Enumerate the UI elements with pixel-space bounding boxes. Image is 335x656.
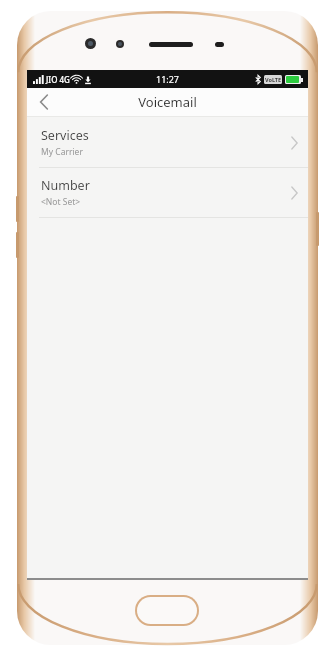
button[interactable]: Services [27,118,308,167]
staticText: 11:27 [156,73,180,85]
staticText: JIO 4G [46,74,70,85]
staticText: Number [41,177,90,194]
button[interactable]: Back [27,88,61,116]
staticText: Services [41,127,89,144]
staticText: VoLTE [265,76,282,83]
button[interactable]: Number [27,168,308,217]
staticText: My Carrier [41,146,83,158]
staticText: Voicemail [138,93,197,111]
staticText: <Not Set> [41,196,81,208]
